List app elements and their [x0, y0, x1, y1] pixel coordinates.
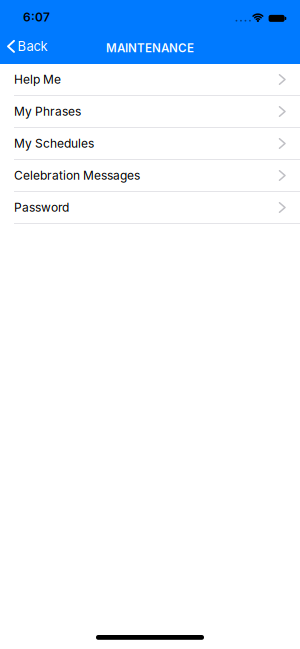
button[interactable]: My Phrases — [0, 96, 300, 128]
button[interactable]: Password — [0, 192, 300, 224]
button[interactable]: Help Me — [0, 64, 300, 96]
staticText: Password — [14, 200, 69, 215]
button[interactable]: Celebration Messages — [0, 160, 300, 192]
staticText: My Schedules — [14, 136, 94, 151]
staticText: Help Me — [14, 72, 61, 87]
staticText: Back — [17, 38, 47, 54]
button[interactable]: Back — [8, 38, 47, 54]
button[interactable]: My Schedules — [0, 128, 300, 160]
staticText: My Phrases — [14, 104, 81, 119]
staticText: 6:07 — [23, 10, 50, 24]
staticText: MAINTENANCE — [106, 41, 194, 55]
staticText: Celebration Messages — [14, 168, 140, 183]
